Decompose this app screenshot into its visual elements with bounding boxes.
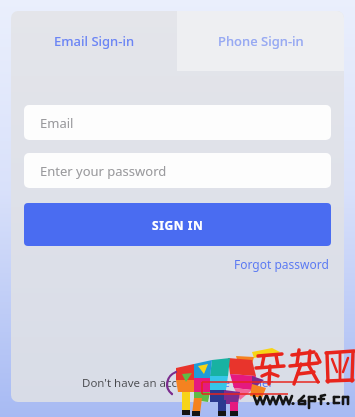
button[interactable]: Phone Sign-in — [177, 11, 344, 71]
staticText: Email Sign-in — [54, 32, 135, 50]
staticText: Phone Sign-in — [218, 32, 304, 50]
staticText: SIGN IN — [152, 217, 204, 233]
staticText: Be A Seller — [216, 375, 274, 391]
staticText: Email — [40, 114, 74, 132]
staticText: Enter your password — [40, 162, 167, 180]
button[interactable]: Email Sign-in — [11, 11, 177, 71]
staticText: Don't have an account ? — [82, 375, 211, 391]
staticText: Forgot password — [234, 256, 329, 272]
button[interactable]: Forgot password — [232, 253, 331, 275]
button[interactable]: Enter your password — [24, 153, 331, 188]
button[interactable]: Email — [24, 105, 331, 140]
other: Watermark — [168, 346, 355, 417]
button[interactable]: SIGN IN — [24, 203, 331, 246]
button[interactable]: Be A Seller — [216, 375, 274, 391]
